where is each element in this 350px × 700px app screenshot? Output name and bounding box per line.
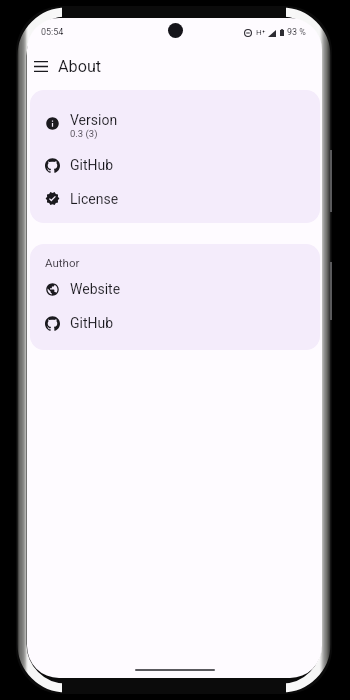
button[interactable]: GitHub <box>30 306 320 340</box>
staticText: H <box>256 28 262 37</box>
staticText: License <box>70 191 119 207</box>
staticText: 05:54 <box>41 27 64 38</box>
staticText: GitHub <box>70 157 114 173</box>
staticText: About <box>58 57 102 76</box>
staticText: 93 % <box>287 27 306 38</box>
button[interactable]: Version <box>30 98 320 148</box>
button[interactable]: Open navigation menu <box>27 53 54 80</box>
button[interactable]: Website <box>30 272 320 306</box>
staticText: 0.3 (3) <box>70 128 98 139</box>
staticText: + <box>262 27 266 34</box>
staticText: Website <box>70 281 121 297</box>
staticText: Author <box>45 256 80 269</box>
staticText: GitHub <box>70 315 114 331</box>
button[interactable]: GitHub <box>30 148 320 182</box>
button[interactable]: License <box>30 182 320 215</box>
staticText: Version <box>70 112 118 128</box>
